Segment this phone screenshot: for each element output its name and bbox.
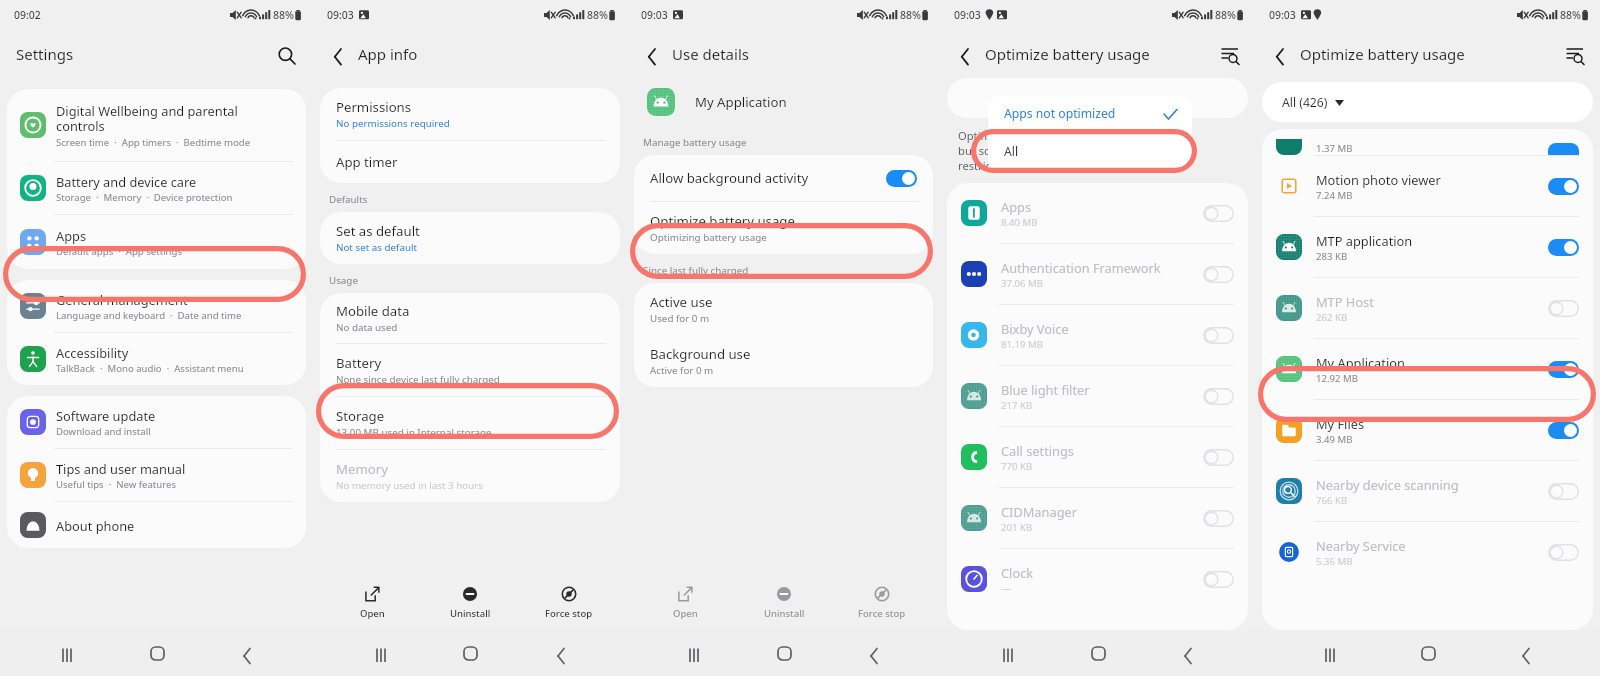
button[interactable]: Back bbox=[1165, 631, 1209, 675]
button[interactable]: On bbox=[1548, 361, 1579, 378]
staticText: Set as default bbox=[336, 222, 420, 240]
button[interactable]: Back bbox=[322, 39, 352, 69]
button[interactable]: Uninstall bbox=[430, 586, 510, 620]
button[interactable]: Back bbox=[949, 39, 979, 69]
button[interactable]: My Application bbox=[1262, 339, 1593, 399]
button[interactable]: Permissions bbox=[320, 88, 620, 140]
button[interactable]: Home bbox=[1076, 631, 1120, 675]
staticText: 7.24 MB bbox=[1316, 189, 1353, 202]
staticText: Active for 0 m bbox=[650, 364, 714, 377]
button[interactable]: Storage bbox=[320, 397, 620, 449]
button[interactable]: Recents bbox=[359, 631, 403, 675]
button[interactable]: All bbox=[988, 131, 1192, 172]
button[interactable]: App timer bbox=[320, 141, 620, 183]
button[interactable]: Open bbox=[332, 586, 412, 620]
button[interactable]: All (426) bbox=[1262, 82, 1593, 122]
staticText: 217 KB bbox=[1001, 399, 1033, 412]
button[interactable]: 1.37 MB bbox=[1262, 129, 1593, 155]
button[interactable]: Back bbox=[1264, 39, 1294, 69]
button[interactable]: Home bbox=[135, 631, 179, 675]
button[interactable]: CIDManager bbox=[947, 488, 1248, 548]
button[interactable]: Clock bbox=[947, 549, 1248, 609]
button[interactable]: Recents bbox=[1308, 631, 1352, 675]
button[interactable]: On bbox=[1548, 178, 1579, 195]
staticText: 3.49 MB bbox=[1316, 433, 1353, 446]
button[interactable]: About phone bbox=[7, 502, 306, 548]
button[interactable]: Motion photo viewer bbox=[1262, 156, 1593, 216]
button[interactable]: Off bbox=[1203, 205, 1234, 222]
staticText: 262 KB bbox=[1316, 311, 1348, 324]
staticText: Use details bbox=[672, 44, 749, 64]
button[interactable]: Force stop bbox=[529, 586, 609, 620]
button[interactable]: Blue light filter bbox=[947, 366, 1248, 426]
button[interactable]: Active use bbox=[634, 283, 933, 335]
staticText: Optimize battery usage bbox=[1300, 44, 1465, 64]
staticText: All (426) bbox=[1282, 94, 1328, 111]
button[interactable]: Home bbox=[448, 631, 492, 675]
staticText: App info bbox=[358, 44, 418, 64]
button[interactable]: Accessibility bbox=[7, 333, 306, 385]
button[interactable]: Off bbox=[1548, 544, 1579, 561]
button[interactable]: Nearby device scanning bbox=[1262, 461, 1593, 521]
button[interactable]: Off bbox=[1203, 571, 1234, 588]
button[interactable]: MTP application bbox=[1262, 217, 1593, 277]
button[interactable]: Tips and user manual bbox=[7, 449, 306, 501]
button[interactable]: Uninstall bbox=[744, 586, 824, 620]
staticText: 5.36 MB bbox=[1316, 555, 1353, 568]
button[interactable]: Apps not optimized bbox=[988, 96, 1192, 131]
button[interactable]: On bbox=[886, 170, 917, 187]
button[interactable]: Search list bbox=[1559, 39, 1589, 69]
button[interactable]: Optimize battery usage bbox=[634, 202, 933, 254]
button[interactable]: Off bbox=[1548, 300, 1579, 317]
staticText: General management bbox=[56, 291, 188, 308]
button[interactable]: On bbox=[1548, 239, 1579, 256]
button[interactable]: Search list bbox=[1214, 39, 1244, 69]
button[interactable]: Back bbox=[538, 631, 582, 675]
button[interactable]: Bixby Voice bbox=[947, 305, 1248, 365]
button[interactable]: Recents bbox=[672, 631, 716, 675]
staticText: Bixby Voice bbox=[1001, 320, 1069, 337]
button[interactable]: Off bbox=[1203, 388, 1234, 405]
button[interactable]: Off bbox=[1203, 327, 1234, 344]
button[interactable]: General management bbox=[7, 280, 306, 332]
button[interactable]: Off bbox=[1203, 266, 1234, 283]
button[interactable]: Off bbox=[1203, 510, 1234, 527]
staticText: My Application bbox=[695, 93, 787, 111]
button[interactable]: Recents bbox=[45, 631, 89, 675]
button[interactable]: Force stop bbox=[842, 586, 922, 620]
button[interactable]: Mobile data bbox=[320, 293, 620, 343]
staticText: 09:03 bbox=[954, 8, 981, 22]
button[interactable]: Call settings bbox=[947, 427, 1248, 487]
button[interactable]: Set as default bbox=[320, 212, 620, 264]
button[interactable]: Back bbox=[636, 39, 666, 69]
button[interactable]: Open bbox=[645, 586, 725, 620]
staticText: CIDManager bbox=[1001, 503, 1078, 520]
button[interactable]: Off bbox=[1203, 449, 1234, 466]
button[interactable]: Nearby Service bbox=[1262, 522, 1593, 582]
button[interactable]: Home bbox=[762, 631, 806, 675]
button[interactable]: Back bbox=[851, 631, 895, 675]
staticText: Uninstall bbox=[764, 607, 805, 620]
button[interactable]: MTP Host bbox=[1262, 278, 1593, 338]
staticText: No permissions required bbox=[336, 117, 450, 130]
staticText: Permissions bbox=[336, 98, 412, 116]
button[interactable]: Memory bbox=[320, 450, 620, 502]
button[interactable]: Digital Wellbeing and parental controls bbox=[7, 89, 306, 161]
button[interactable]: Allow background activity bbox=[634, 155, 933, 201]
staticText: Active use bbox=[650, 293, 713, 311]
button[interactable]: Back bbox=[224, 631, 268, 675]
button[interactable]: Background use bbox=[634, 335, 933, 387]
button[interactable]: Battery bbox=[320, 344, 620, 396]
button[interactable]: Battery and device care bbox=[7, 162, 306, 214]
button[interactable]: Off bbox=[1548, 483, 1579, 500]
button[interactable]: Software update bbox=[7, 396, 306, 448]
button[interactable]: Recents bbox=[986, 631, 1030, 675]
button[interactable]: On bbox=[1548, 422, 1579, 439]
button[interactable]: Apps bbox=[7, 215, 306, 269]
button[interactable]: Apps bbox=[947, 183, 1248, 243]
button[interactable]: Back bbox=[1503, 631, 1547, 675]
button[interactable]: Home bbox=[1406, 631, 1450, 675]
button[interactable]: Authentication Framework bbox=[947, 244, 1248, 304]
button[interactable]: Search bbox=[270, 39, 300, 69]
button[interactable]: My Files bbox=[1262, 400, 1593, 460]
